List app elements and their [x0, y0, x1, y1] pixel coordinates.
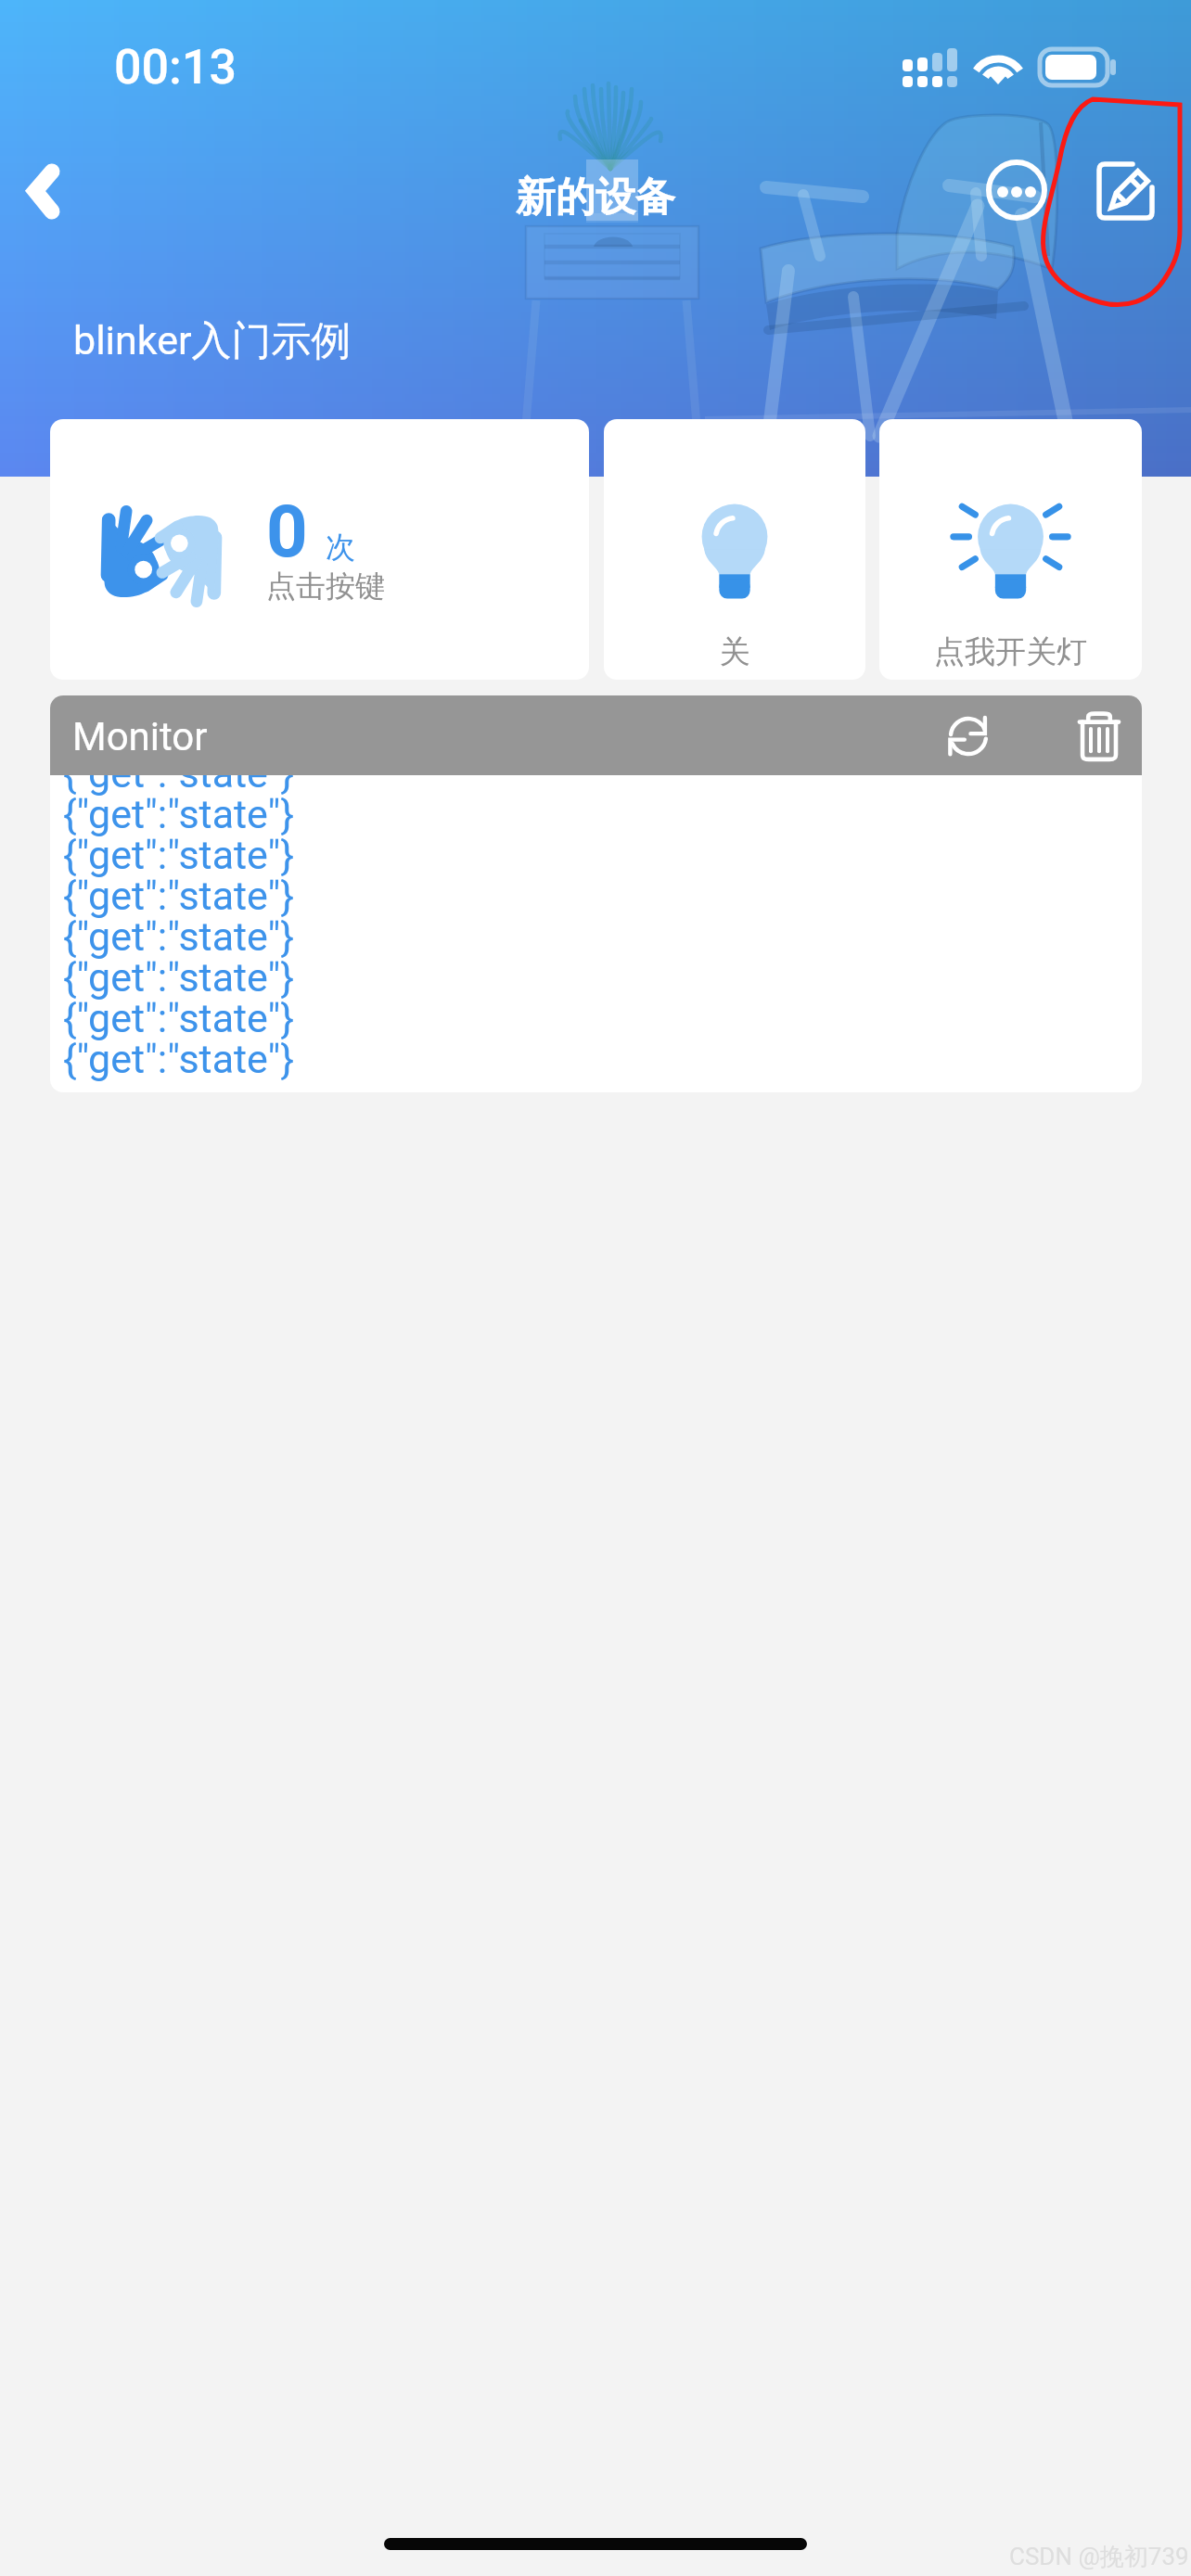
- button[interactable]: Back: [0, 148, 93, 241]
- staticText: 点击按键: [266, 567, 385, 605]
- staticText: blinker入门示例: [73, 316, 352, 366]
- staticText: Monitor: [72, 714, 208, 759]
- button[interactable]: More options: [976, 149, 1057, 231]
- staticText: 点我开关灯: [879, 632, 1142, 671]
- staticText: 00:13: [114, 39, 237, 96]
- button[interactable]: Edit: [1087, 150, 1161, 224]
- staticText: 新的设备: [0, 172, 1191, 223]
- button[interactable]: 0: [50, 419, 589, 680]
- button[interactable]: 点我开关灯: [879, 419, 1142, 680]
- staticText: 0: [266, 490, 308, 574]
- button[interactable]: Clear log: [1070, 705, 1128, 762]
- staticText: 关: [604, 632, 865, 671]
- staticText: 次: [326, 529, 355, 566]
- staticText: CSDN @挽初739: [1009, 2542, 1189, 2572]
- button[interactable]: Refresh: [937, 705, 1000, 768]
- button[interactable]: 关: [604, 419, 865, 680]
- staticText: {"get":"state"} {"get":"state"} {"get":"…: [63, 750, 294, 1082]
